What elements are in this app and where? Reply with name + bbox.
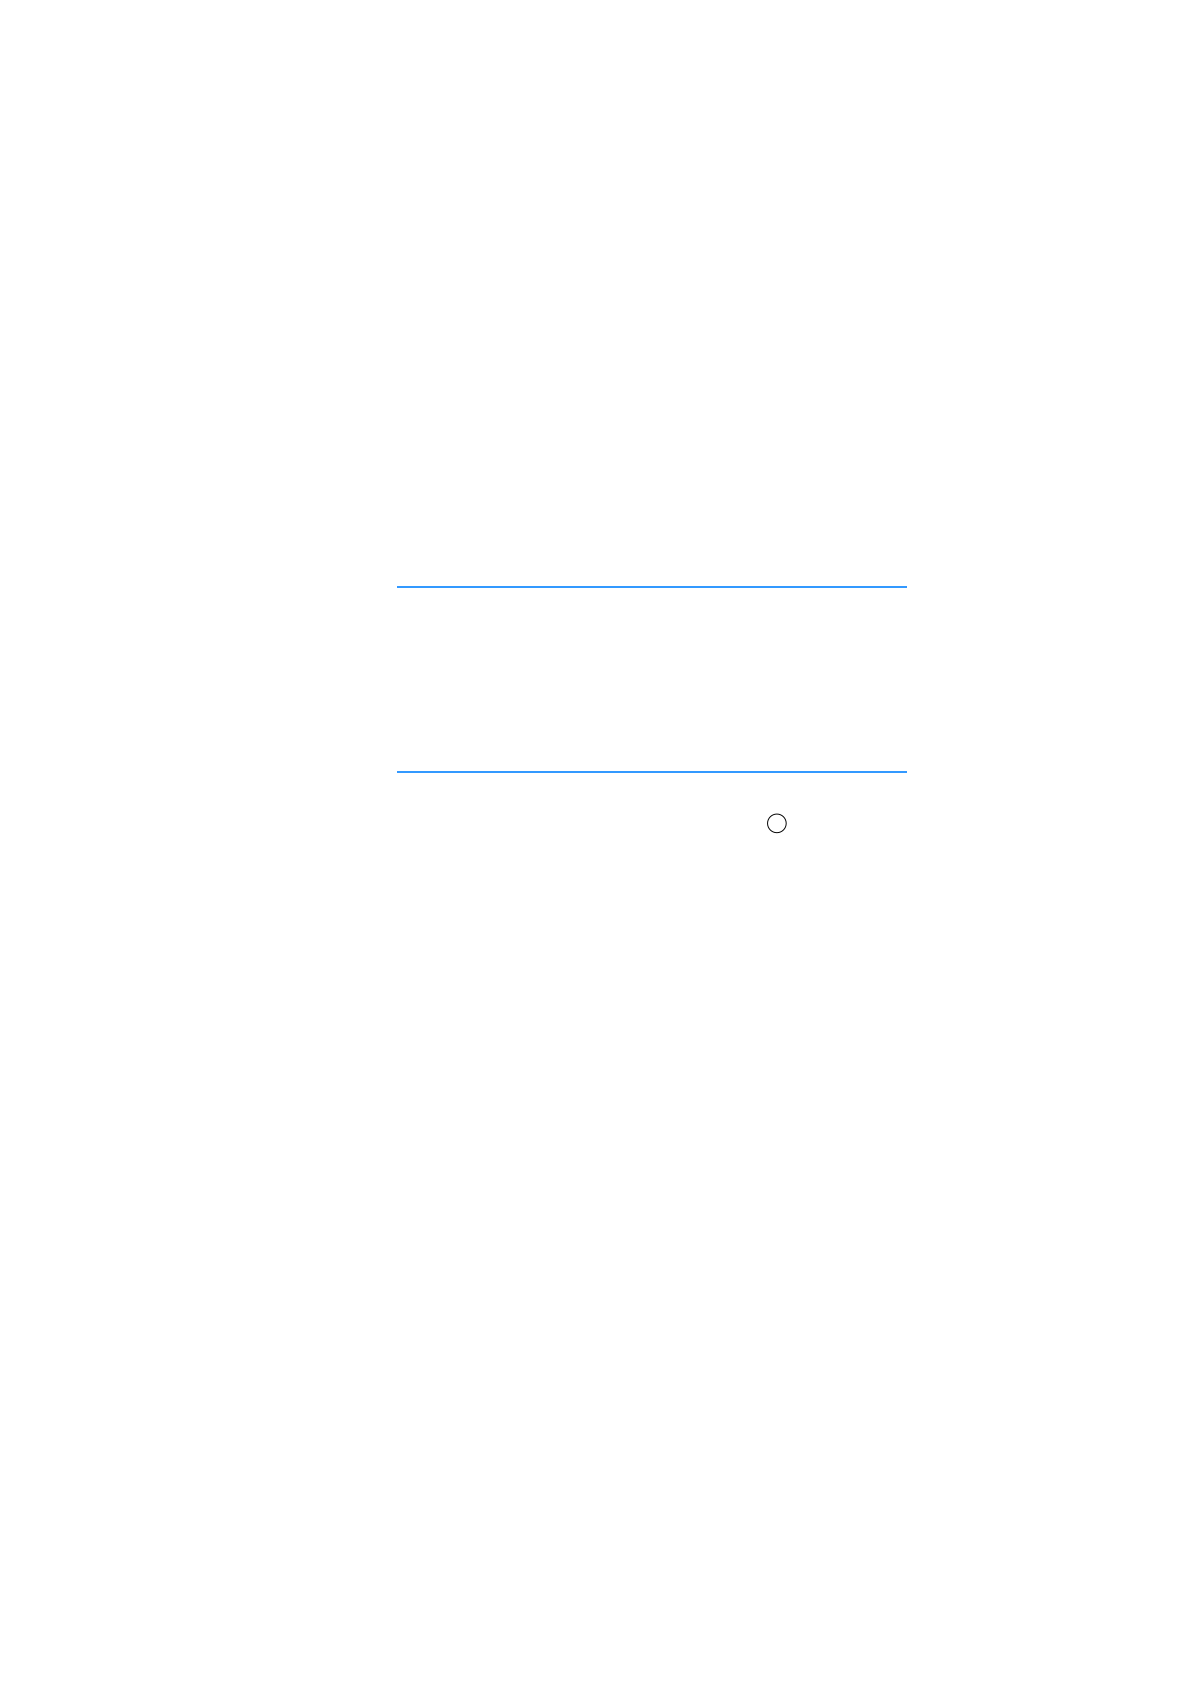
button[interactable]: Select	[767, 814, 786, 833]
